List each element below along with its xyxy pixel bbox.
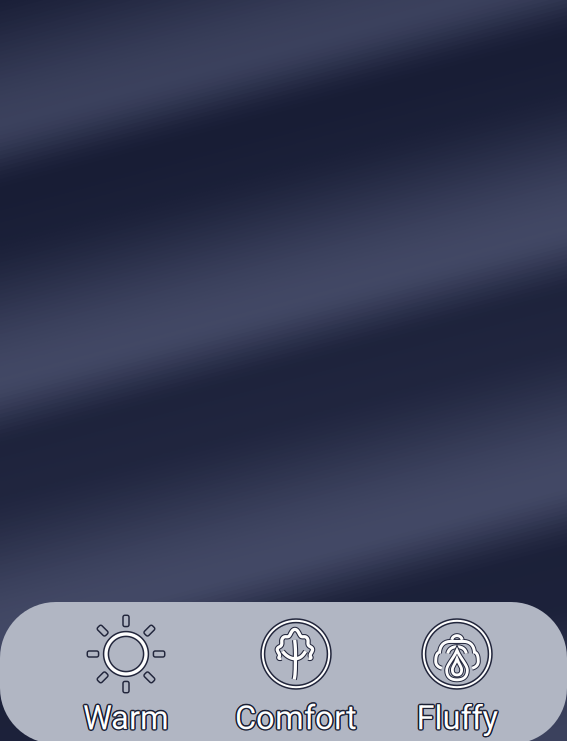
staticText: Fluffy	[417, 700, 498, 738]
staticText: Fluffy	[416, 699, 497, 737]
staticText: Warm	[83, 699, 169, 737]
staticText: Warm	[84, 700, 170, 738]
staticText: Warm	[82, 699, 168, 737]
staticText: Comfort	[235, 697, 357, 736]
staticText: Comfort	[235, 700, 357, 739]
staticText: Warm	[84, 699, 170, 737]
button[interactable]: Fluffy	[377, 610, 537, 740]
staticText: Comfort	[236, 699, 358, 737]
staticText: Warm	[82, 700, 168, 738]
staticText: Fluffy	[417, 698, 498, 736]
staticText: Fluffy	[418, 699, 499, 737]
staticText: Comfort	[234, 700, 356, 738]
staticText: Fluffy	[415, 699, 496, 737]
staticText: Fluffy	[415, 700, 496, 738]
staticText: Fluffy	[416, 697, 497, 736]
staticText: Comfort	[236, 700, 358, 738]
staticText: Comfort	[236, 698, 358, 736]
staticText: Comfort	[234, 698, 356, 736]
staticText: Warm	[82, 698, 168, 736]
staticText: Warm	[84, 698, 170, 736]
staticText: Fluffy	[416, 700, 497, 739]
button[interactable]: Warm	[46, 610, 206, 740]
staticText: Fluffy	[415, 698, 496, 736]
staticText: Comfort	[235, 699, 357, 737]
button[interactable]: Comfort	[216, 610, 376, 740]
staticText: Comfort	[234, 699, 356, 737]
staticText: Warm	[83, 697, 169, 736]
staticText: Warm	[83, 700, 169, 739]
